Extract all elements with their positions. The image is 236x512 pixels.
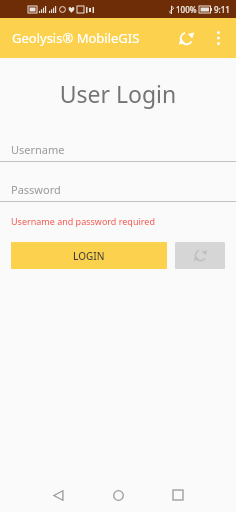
staticText: Username — [11, 142, 65, 157]
staticText: 100% — [176, 4, 197, 15]
button[interactable]: Back — [37, 478, 79, 512]
staticText: Username and password required — [11, 215, 155, 227]
button[interactable]: Refresh — [168, 20, 204, 56]
staticText: User Login — [0, 78, 236, 109]
button[interactable]: Sync — [175, 242, 225, 269]
staticText: 9:11 — [214, 4, 230, 15]
staticText: Geolysis® MobileGIS — [12, 29, 140, 47]
button[interactable]: Home — [97, 478, 139, 512]
staticText: LOGIN — [73, 249, 105, 263]
button[interactable]: Username — [0, 138, 236, 161]
button[interactable]: Recent apps — [157, 478, 199, 512]
button[interactable]: More options — [204, 24, 232, 52]
button[interactable]: LOGIN — [11, 242, 167, 269]
button[interactable]: Password — [0, 178, 236, 201]
staticText: Password — [11, 182, 61, 197]
